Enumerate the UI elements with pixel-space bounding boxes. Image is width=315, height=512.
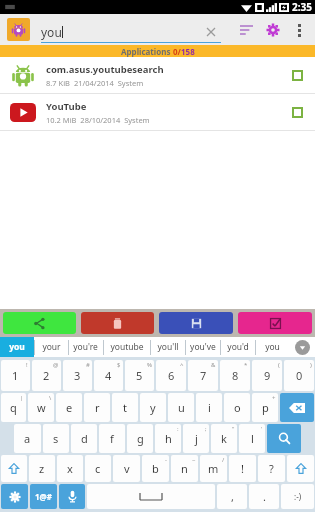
button[interactable]: .: [249, 484, 279, 509]
button[interactable]: q: [1, 393, 26, 422]
button[interactable]: Select YouTube: [285, 100, 309, 124]
button[interactable]: 1: [1, 360, 30, 391]
button[interactable]: you: [255, 337, 290, 357]
staticText: 8: [232, 368, 239, 383]
button[interactable]: you're: [68, 337, 103, 357]
button[interactable]: Sort: [233, 17, 259, 43]
button[interactable]: App icon: [7, 18, 30, 41]
staticText: !: [241, 461, 244, 476]
button[interactable]: 6: [156, 360, 186, 391]
button[interactable]: ?: [258, 455, 285, 482]
staticText: a: [24, 431, 31, 446]
button[interactable]: o: [224, 393, 250, 422]
staticText: 0: [296, 368, 303, 383]
button[interactable]: d: [71, 424, 97, 453]
staticText: +: [272, 394, 276, 402]
button[interactable]: com.asus.youtubesearch: [0, 57, 315, 93]
button[interactable]: !: [229, 455, 256, 482]
button[interactable]: ,: [217, 484, 247, 509]
button[interactable]: b: [142, 455, 169, 482]
button[interactable]: Search: [267, 424, 301, 453]
button[interactable]: 1@#: [30, 484, 57, 509]
button[interactable]: you'll: [150, 337, 185, 357]
button[interactable]: x: [57, 455, 83, 482]
button[interactable]: 2: [32, 360, 61, 391]
staticText: b: [152, 461, 159, 476]
staticText: w: [37, 400, 46, 415]
button[interactable]: f: [99, 424, 125, 453]
button[interactable]: Clear: [203, 24, 219, 40]
button[interactable]: i: [196, 393, 222, 422]
staticText: Applications: [121, 46, 173, 57]
button[interactable]: 9: [252, 360, 282, 391]
button[interactable]: you: [0, 337, 34, 357]
button[interactable]: a: [14, 424, 41, 453]
button[interactable]: Select all: [238, 312, 312, 334]
staticText: you'd: [227, 341, 249, 353]
button[interactable]: your: [34, 337, 68, 357]
button[interactable]: you'd: [220, 337, 255, 357]
button[interactable]: :-): [281, 484, 314, 509]
button[interactable]: YouTube: [0, 94, 315, 130]
button[interactable]: Select com.asus.youtubesearch: [285, 63, 309, 87]
button[interactable]: 5: [125, 360, 154, 391]
button[interactable]: e: [56, 393, 82, 422]
staticText: |: [20, 394, 24, 402]
button[interactable]: Delete: [81, 312, 154, 334]
button[interactable]: 0: [284, 360, 314, 391]
button[interactable]: Keyboard settings: [1, 484, 28, 509]
button[interactable]: u: [168, 393, 194, 422]
button[interactable]: More suggestions: [290, 337, 315, 357]
button[interactable]: h: [155, 424, 181, 453]
staticText: #: [86, 361, 90, 369]
staticText: v: [124, 461, 130, 476]
button[interactable]: t: [112, 393, 138, 422]
staticText: m: [208, 461, 219, 476]
button[interactable]: Shift: [287, 455, 314, 482]
button[interactable]: Shift: [1, 455, 27, 482]
button[interactable]: Voice input: [59, 484, 85, 509]
button[interactable]: v: [113, 455, 140, 482]
button[interactable]: m: [200, 455, 227, 482]
staticText: t: [123, 400, 127, 415]
button[interactable]: j: [183, 424, 209, 453]
button[interactable]: g: [127, 424, 153, 453]
button[interactable]: you've: [185, 337, 220, 357]
staticText: 158: [181, 46, 195, 57]
button[interactable]: l: [239, 424, 265, 453]
staticText: u: [178, 400, 185, 415]
button[interactable]: Space: [87, 484, 215, 509]
staticText: z: [39, 461, 45, 476]
staticText: n: [181, 461, 188, 476]
button[interactable]: c: [85, 455, 111, 482]
staticText: 7: [200, 368, 207, 383]
button[interactable]: y: [140, 393, 166, 422]
button[interactable]: 3: [63, 360, 92, 391]
button[interactable]: Share: [3, 312, 76, 334]
button[interactable]: w: [28, 393, 54, 422]
button[interactable]: s: [43, 424, 69, 453]
button[interactable]: z: [29, 455, 55, 482]
staticText: h: [165, 431, 172, 446]
button[interactable]: More options: [287, 18, 311, 42]
staticText: /: [222, 456, 225, 464]
button[interactable]: n: [171, 455, 198, 482]
staticText: x: [67, 461, 73, 476]
button[interactable]: 8: [220, 360, 250, 391]
button[interactable]: Backspace: [280, 393, 314, 422]
button[interactable]: k: [211, 424, 237, 453]
button[interactable]: 4: [94, 360, 123, 391]
button[interactable]: Save: [159, 312, 233, 334]
staticText: g: [137, 431, 144, 446]
button[interactable]: youtube: [103, 337, 150, 357]
staticText: 9: [264, 368, 271, 383]
button[interactable]: p: [252, 393, 278, 422]
staticText: p: [262, 400, 269, 415]
button[interactable]: r: [84, 393, 110, 422]
button[interactable]: 7: [188, 360, 218, 391]
button[interactable]: Settings: [259, 16, 287, 44]
staticText: q: [10, 400, 17, 415]
staticText: f: [110, 431, 114, 446]
staticText: com.asus.youtubesearch: [46, 63, 164, 76]
staticText: 8.7 KiB 21/04/2014 System: [46, 78, 144, 88]
